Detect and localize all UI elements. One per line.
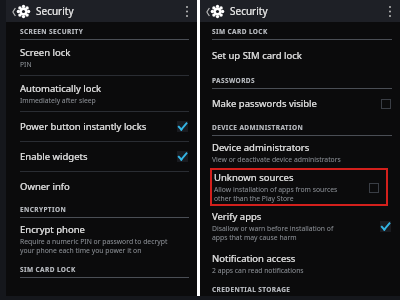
staticText: Security: [230, 4, 268, 18]
staticText: View or deactivate device administrators: [212, 155, 341, 164]
staticText: SCREEN SECURITY: [20, 27, 84, 36]
staticText: Enable widgets: [20, 150, 88, 163]
staticText: Make passwords visible: [212, 97, 317, 110]
button[interactable]: Make passwords visible: [200, 89, 400, 118]
button[interactable]: Automatically lock: [6, 76, 197, 111]
staticText: CREDENTIAL STORAGE: [212, 285, 291, 294]
button[interactable]: More options: [383, 2, 397, 21]
staticText: Allow installation of apps from sources …: [214, 185, 338, 203]
button[interactable]: Navigate up: [204, 2, 226, 21]
staticText: Verify apps: [212, 210, 262, 223]
staticText: Require a numeric PIN or password to dec…: [20, 237, 168, 255]
button[interactable]: Screen lock: [6, 40, 197, 75]
button[interactable]: Navigate up: [10, 2, 32, 21]
staticText: DEVICE ADMINISTRATION: [212, 123, 304, 132]
staticText: Screen lock: [20, 46, 71, 59]
button[interactable]: More options: [180, 2, 194, 21]
button[interactable]: Power button instantly locks: [6, 112, 197, 141]
button[interactable]: Owner info: [6, 172, 197, 200]
staticText: SIM CARD LOCK: [20, 265, 76, 274]
staticText: 2 apps can read notifications: [212, 266, 304, 275]
staticText: Owner info: [20, 180, 70, 193]
staticText: Disallow or warn before installation of …: [212, 224, 334, 242]
staticText: Device administrators: [212, 141, 310, 154]
button[interactable]: Device administrators: [200, 136, 400, 168]
button[interactable]: Set up SIM card lock: [200, 40, 400, 71]
staticText: ENCRYPTION: [20, 205, 67, 214]
button[interactable]: Enable widgets: [6, 142, 197, 171]
staticText: Unknown sources: [214, 171, 294, 184]
button[interactable]: Notification access: [200, 246, 400, 280]
staticText: Notification access: [212, 252, 296, 265]
staticText: Security: [36, 4, 74, 18]
staticText: SIM CARD LOCK: [212, 27, 268, 36]
staticText: Immediately after sleep: [20, 96, 96, 105]
staticText: PASSWORDS: [212, 76, 255, 85]
staticText: PIN: [20, 60, 32, 69]
staticText: Encrypt phone: [20, 223, 85, 236]
button[interactable]: Verify apps: [200, 206, 400, 246]
staticText: Power button instantly locks: [20, 120, 147, 133]
button[interactable]: Encrypt phone: [6, 218, 197, 260]
staticText: Automatically lock: [20, 82, 102, 95]
button[interactable]: Unknown sources: [210, 168, 388, 206]
staticText: Set up SIM card lock: [212, 49, 302, 62]
